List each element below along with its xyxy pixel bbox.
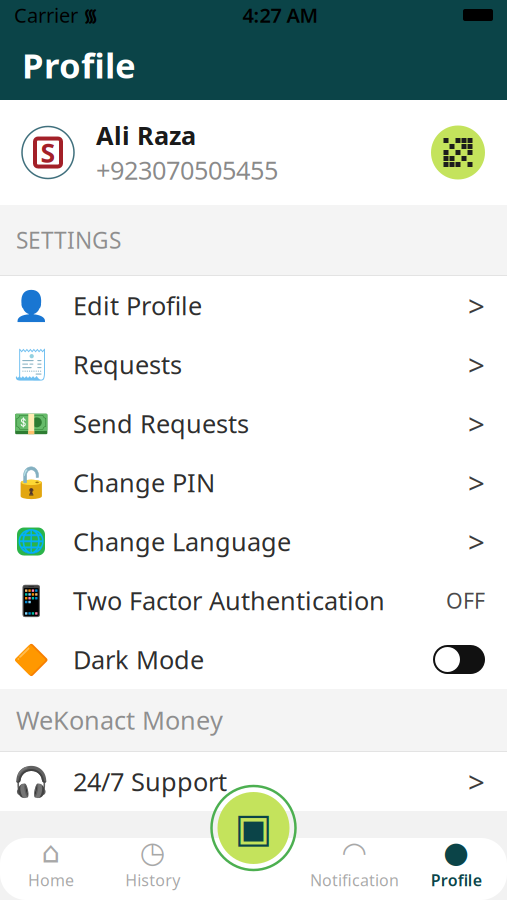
staticText: ● (443, 836, 469, 869)
staticText: Ali Raza (96, 118, 196, 152)
staticText: > (468, 345, 485, 384)
staticText: ◷ (140, 836, 166, 869)
button[interactable]: Show QR code (431, 125, 485, 179)
button[interactable]: ● (405, 837, 507, 893)
staticText: Dark Mode (73, 643, 204, 676)
staticText: 🌐 (17, 529, 45, 554)
staticText: 🧾 (12, 348, 49, 381)
staticText: > (468, 404, 485, 443)
button[interactable]: 🌐 (0, 512, 507, 571)
staticText: 4:27 AM (242, 2, 318, 28)
staticText: > (468, 463, 485, 502)
staticText: S (40, 135, 55, 170)
button[interactable]: 🎧 (0, 752, 507, 811)
staticText: OFF (446, 586, 485, 615)
staticText: Requests (73, 348, 182, 381)
staticText: Profile (431, 869, 482, 891)
staticText: 🎧 (12, 765, 49, 798)
staticText: 📱 (12, 584, 49, 617)
button[interactable]: 🔶 (0, 630, 507, 689)
staticText: > (468, 522, 485, 561)
button[interactable]: Scan QR code (209, 784, 297, 872)
staticText: ᯾ (78, 3, 98, 26)
staticText: Two Factor Authentication (73, 584, 385, 617)
staticText: Notification (310, 869, 399, 891)
staticText: Change PIN (73, 466, 215, 499)
staticText: 💵 (12, 407, 49, 440)
staticText: Carrier (14, 2, 78, 28)
button[interactable]: 🧾 (0, 335, 507, 394)
staticText: > (468, 762, 485, 801)
staticText: History (125, 869, 180, 891)
staticText: > (468, 286, 485, 325)
staticText: ▣ (234, 805, 272, 851)
button[interactable]: 💵 (0, 394, 507, 453)
staticText: Home (28, 869, 74, 891)
staticText: Edit Profile (73, 289, 202, 322)
button[interactable]: ◠ (303, 837, 405, 893)
staticText: +923070505455 (96, 153, 278, 187)
button[interactable]: 🔓 (0, 453, 507, 512)
staticText: 🔶 (12, 643, 49, 676)
staticText: Send Requests (73, 407, 249, 440)
staticText: 🔓 (12, 466, 49, 499)
staticText: SETTINGS (16, 225, 121, 255)
staticText: Profile (22, 42, 136, 88)
staticText: ◠ (341, 836, 367, 869)
staticText: Change Language (73, 525, 291, 558)
staticText: 24/7 Support (73, 765, 227, 798)
staticText: ⌂ (41, 836, 60, 869)
staticText: WeKonact Money (16, 703, 223, 737)
staticText: 👤 (12, 289, 49, 322)
button[interactable]: ⌂ (0, 837, 102, 893)
button[interactable]: 👤 (0, 276, 507, 335)
button[interactable]: 📱 (0, 571, 507, 630)
button[interactable]: ◷ (102, 837, 204, 893)
